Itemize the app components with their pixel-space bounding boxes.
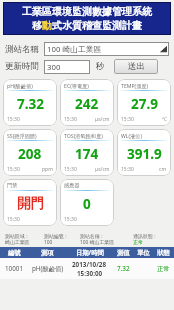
button[interactable]: 選擇測站 (44, 42, 169, 56)
staticText: 測站名稱： (80, 233, 105, 239)
staticText: μs/cm (95, 166, 110, 173)
staticText: 正常 (157, 265, 170, 273)
staticText: SS(懸浮固體) (7, 132, 37, 139)
staticText: 狀態 (157, 249, 170, 257)
staticText: 感應器 (64, 182, 80, 189)
staticText: TEMP(溫度) (121, 82, 149, 89)
staticText: 送出 (128, 61, 145, 72)
button[interactable]: SS(懸浮固體) (3, 129, 57, 176)
staticText: 0 (83, 195, 91, 213)
staticText: 測站編號： (44, 233, 69, 239)
button[interactable]: 300 (44, 60, 90, 74)
staticText: 7.32 (117, 264, 130, 273)
staticText: 15:30 (121, 166, 134, 173)
button[interactable]: pH(酸鹼值) (3, 79, 57, 126)
staticText: cm (159, 166, 167, 173)
staticText: WL(液位) (121, 132, 143, 139)
button[interactable]: 送出 (114, 59, 158, 74)
staticText: 15:30:00 (77, 269, 103, 278)
staticText: 式水質稽查監測計畫 (52, 19, 142, 32)
button[interactable]: 10001 (0, 258, 174, 279)
staticText: 15:30 (7, 216, 20, 223)
staticText: TOS(溶氧飽和度) (64, 132, 103, 139)
button[interactable]: WL(液位) (117, 129, 171, 176)
staticText: 208 (18, 145, 42, 163)
staticText: 崎山工業區 (5, 239, 30, 245)
staticText: 391.9 (127, 145, 162, 163)
staticText: 2013/10/28 (72, 260, 107, 269)
staticText: 開門 (17, 195, 44, 212)
staticText: 日期/時間 (76, 248, 104, 257)
staticText: 單位 (137, 249, 150, 257)
button[interactable]: 感應器 (60, 179, 114, 226)
staticText: pH(酸鹼值) (7, 82, 33, 89)
staticText: 242 (75, 95, 99, 113)
staticText: 工業區環境監測數據管理系統 (22, 5, 152, 18)
staticText: 移 (32, 19, 42, 32)
staticText: 通訊狀態： (133, 233, 158, 239)
staticText: 15:30 (64, 116, 77, 123)
staticText: μs/cm (95, 116, 110, 123)
staticText: 測值 (117, 249, 130, 257)
button[interactable]: 門禁 (3, 179, 57, 226)
staticText: EC(導電度) (64, 82, 89, 89)
staticText: 測站名稱 (5, 44, 39, 55)
staticText: 10001 (5, 264, 24, 273)
staticText: 測站區域： (5, 233, 30, 239)
staticText: 100 崎山工業區 (47, 44, 102, 55)
staticText: 門禁 (7, 182, 18, 189)
staticText: 100 (44, 239, 53, 246)
staticText: 15:30 (64, 216, 77, 223)
button[interactable]: TOS(溶氧飽和度) (60, 129, 114, 176)
staticText: 300 (47, 62, 61, 73)
staticText: 更新時間 (5, 61, 39, 72)
button[interactable]: EC(導電度) (60, 79, 114, 126)
staticText: 15:30 (64, 166, 77, 173)
staticText: 174 (75, 145, 99, 163)
staticText: 100 崎山工業區 (80, 239, 115, 246)
staticText: pH(酸鹼值) (32, 264, 64, 273)
staticText: 正常 (133, 239, 143, 245)
staticText: 27.9 (131, 95, 158, 113)
staticText: 15:30 (121, 116, 134, 123)
staticText: 15:30 (7, 116, 20, 123)
button[interactable]: TEMP(溫度) (117, 79, 171, 126)
staticText: ℃ (162, 116, 167, 123)
staticText: ppm (42, 166, 53, 173)
staticText: 動 (42, 19, 52, 32)
staticText: 15:30 (7, 166, 20, 173)
staticText: 測項 (41, 249, 54, 257)
staticText: 編號 (8, 249, 21, 257)
staticText: 7.32 (17, 95, 44, 113)
staticText: 秒 (96, 61, 105, 72)
